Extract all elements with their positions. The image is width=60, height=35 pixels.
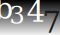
staticText: 7 bbox=[42, 5, 60, 35]
staticText: 3 bbox=[9, 1, 24, 29]
staticText: b bbox=[0, 0, 13, 25]
staticText: 4 bbox=[26, 0, 45, 28]
